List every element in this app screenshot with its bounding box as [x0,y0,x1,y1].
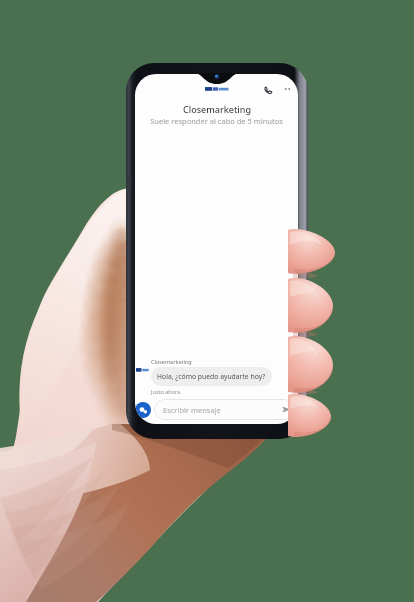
button[interactable]: Abrir chat [135,402,151,418]
staticText: Justo ahora [151,388,181,395]
staticText: Escribir mensaje [163,405,282,415]
button[interactable]: Escribir mensaje [154,399,295,420]
staticText: Hola, ¿cómo puedo ayudarte hoy? [157,372,266,381]
button[interactable]: Más opciones [283,85,294,96]
staticText: Suele responder al cabo de 5 minutos [150,116,283,126]
staticText: Closemarketing [151,358,192,365]
button[interactable]: Llamar [263,85,274,96]
staticText: Closemarketing [183,103,251,115]
